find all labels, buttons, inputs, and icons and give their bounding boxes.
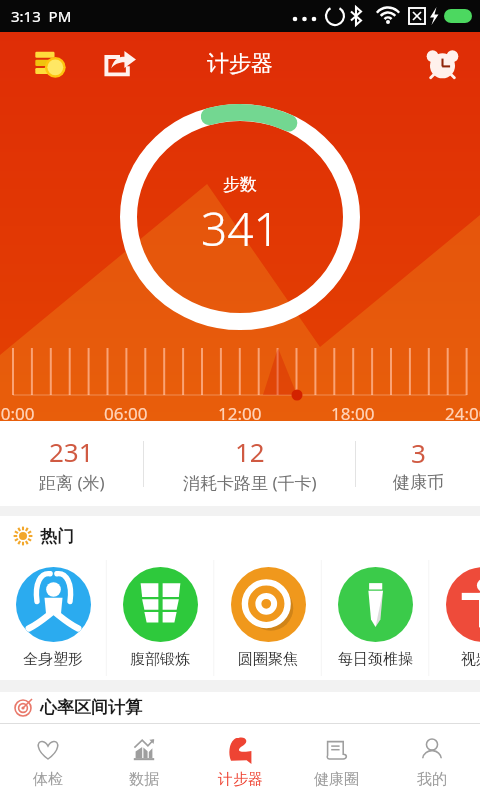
staticText: 视频阵	[461, 650, 480, 669]
staticText: 12	[235, 434, 265, 469]
staticText: 健康圈	[314, 770, 359, 789]
button[interactable]: 圆圈聚焦	[215, 556, 321, 680]
staticText: 24:00	[445, 402, 480, 422]
staticText: 数据	[129, 770, 159, 789]
staticText: 心率区间计算	[40, 697, 142, 718]
button[interactable]: 计步器	[192, 724, 288, 800]
button[interactable]: 每日颈椎操	[322, 556, 428, 680]
button[interactable]: 12	[144, 434, 355, 494]
button[interactable]: 3	[356, 435, 480, 493]
staticText: 231	[49, 434, 94, 469]
staticText: 热门	[40, 526, 74, 547]
staticText: 距离 (米)	[39, 471, 105, 494]
staticText: 12:00	[218, 402, 262, 422]
staticText: 消耗卡路里 (千卡)	[183, 471, 317, 494]
button[interactable]: 健康圈	[288, 724, 384, 800]
button[interactable]: Coins	[22, 35, 78, 93]
staticText: 计步器	[218, 770, 263, 789]
staticText: 3	[411, 435, 426, 470]
staticText: 06:00	[104, 402, 148, 422]
staticText: 健康币	[393, 472, 444, 493]
staticText: 00:00	[0, 402, 35, 422]
button[interactable]: 231	[0, 434, 143, 494]
staticText: 18:00	[331, 402, 375, 422]
staticText: 我的	[417, 770, 447, 789]
staticText: 腹部锻炼	[130, 650, 190, 669]
button[interactable]: 我的	[384, 724, 480, 800]
staticText: 3:13 PM	[11, 6, 72, 26]
button[interactable]: 视频阵	[430, 556, 480, 680]
staticText: 341	[201, 197, 280, 260]
button[interactable]: 腹部锻炼	[107, 556, 213, 680]
button[interactable]: 体检	[0, 724, 96, 800]
staticText: 每日颈椎操	[338, 650, 413, 669]
staticText: 计步器	[207, 50, 273, 78]
staticText: 圆圈聚焦	[238, 650, 298, 669]
button[interactable]: 数据	[96, 724, 192, 800]
button[interactable]: Share	[92, 35, 148, 93]
staticText: 全身塑形	[23, 650, 83, 669]
button[interactable]: Alarm	[414, 35, 470, 93]
staticText: 步数	[223, 174, 257, 195]
staticText: 体检	[33, 770, 63, 789]
button[interactable]: 全身塑形	[0, 556, 106, 680]
